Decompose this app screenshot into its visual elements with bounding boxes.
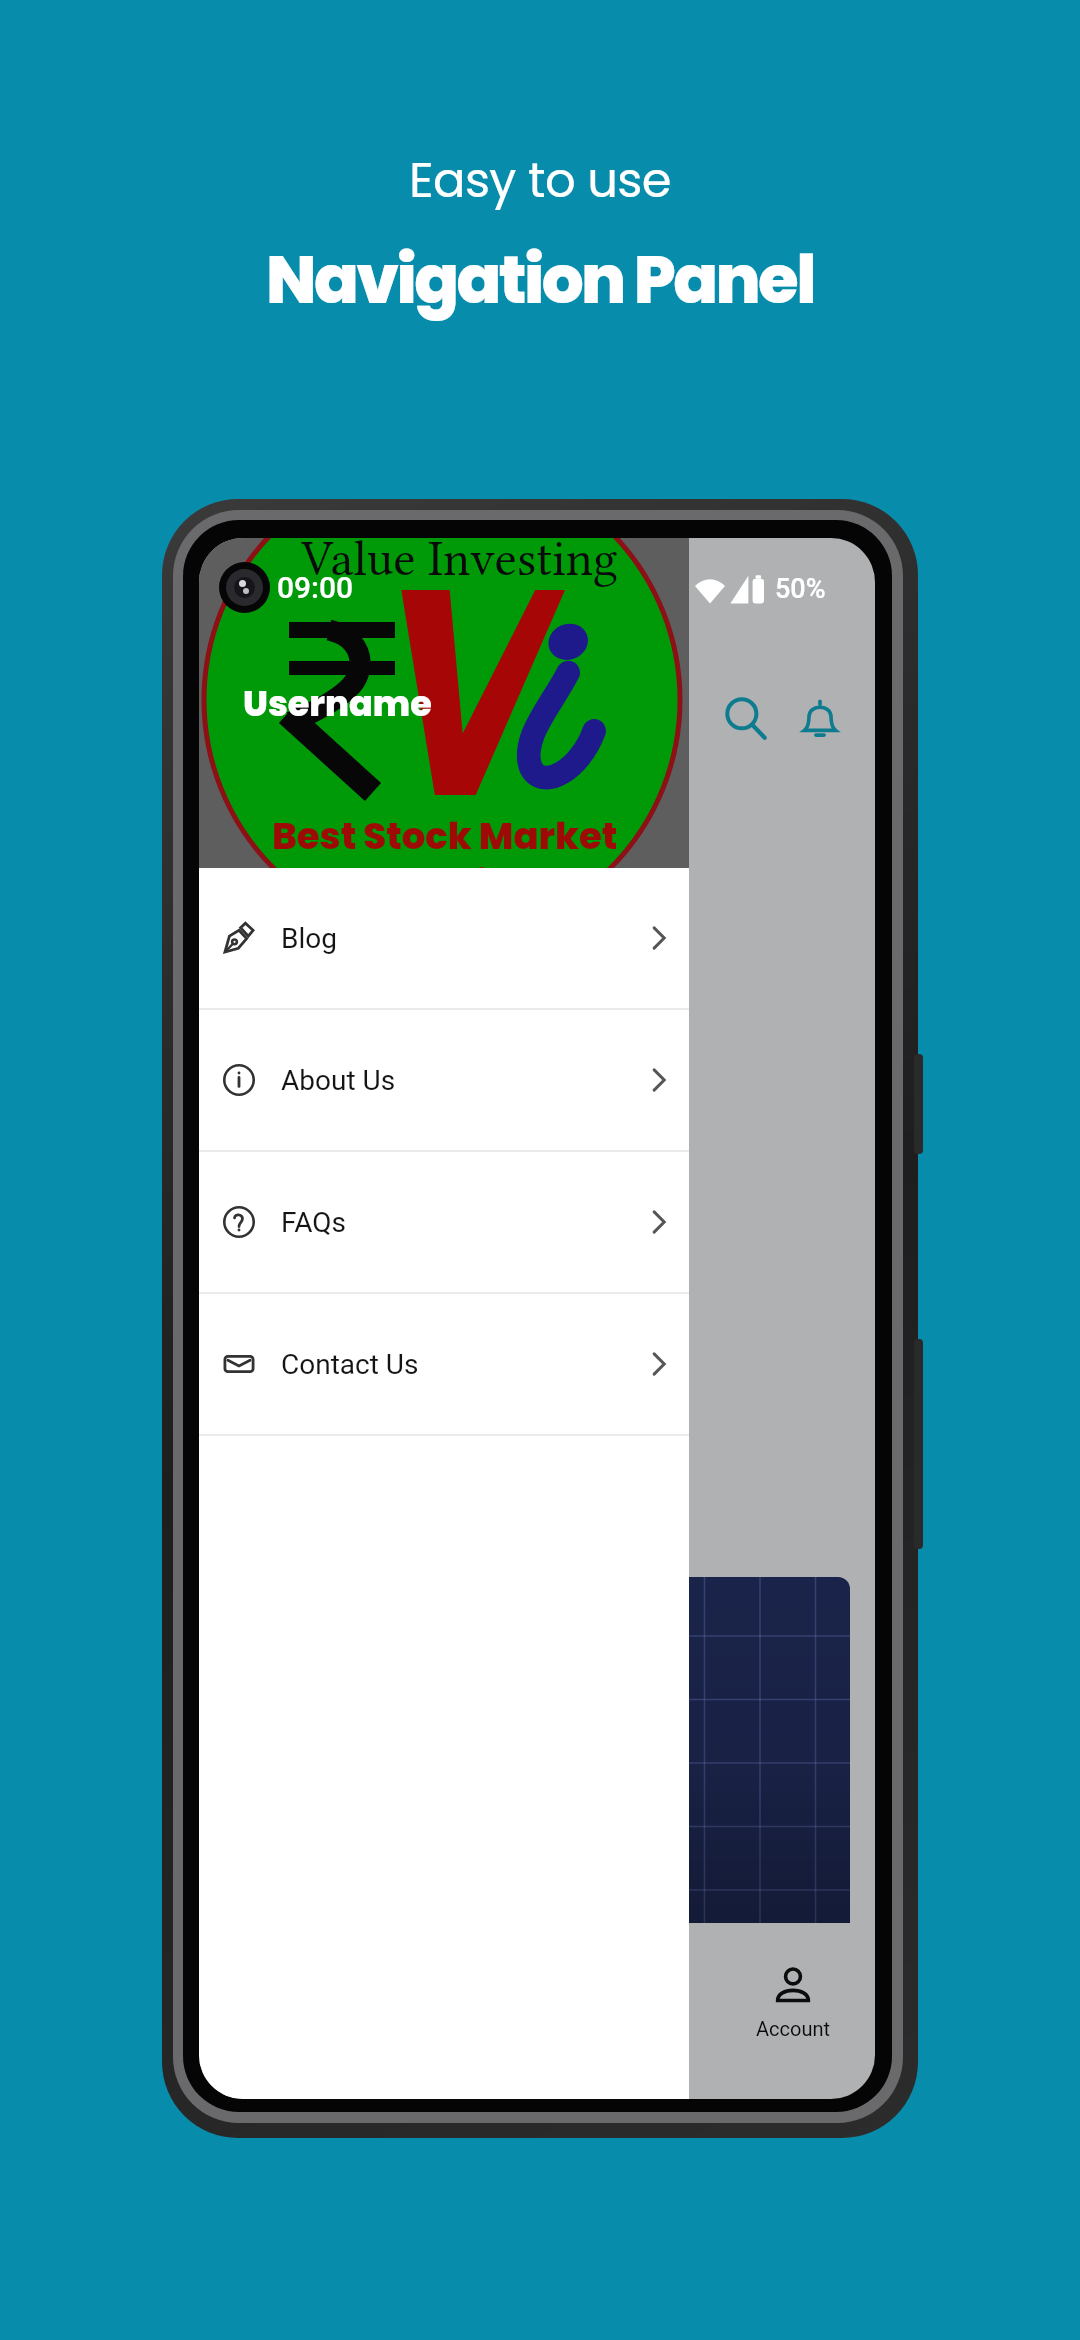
staticText: Username (243, 679, 432, 728)
staticText: Contact Us (281, 1348, 419, 1381)
staticText: Easy to use (409, 147, 671, 214)
staticText: Value Investing (301, 538, 618, 587)
button[interactable]: Blog (199, 868, 689, 1010)
staticText: FAQs (281, 1206, 346, 1239)
button[interactable]: Account (698, 1923, 875, 2099)
staticText: Blog (281, 922, 337, 955)
staticText: 09:00 (277, 570, 354, 605)
button[interactable]: FAQs (199, 1152, 689, 1294)
button[interactable]: Search (709, 683, 783, 757)
staticText: Best Stock Market (272, 810, 618, 862)
staticText: Account (756, 2017, 831, 2040)
staticText: Navigation Panel (266, 234, 814, 326)
button[interactable]: About Us (199, 1010, 689, 1152)
staticText: About Us (281, 1064, 396, 1097)
staticText: Education (342, 858, 537, 910)
button[interactable]: Notifications (783, 683, 857, 757)
button[interactable]: Contact Us (199, 1294, 689, 1436)
staticText: 50% (775, 573, 826, 605)
